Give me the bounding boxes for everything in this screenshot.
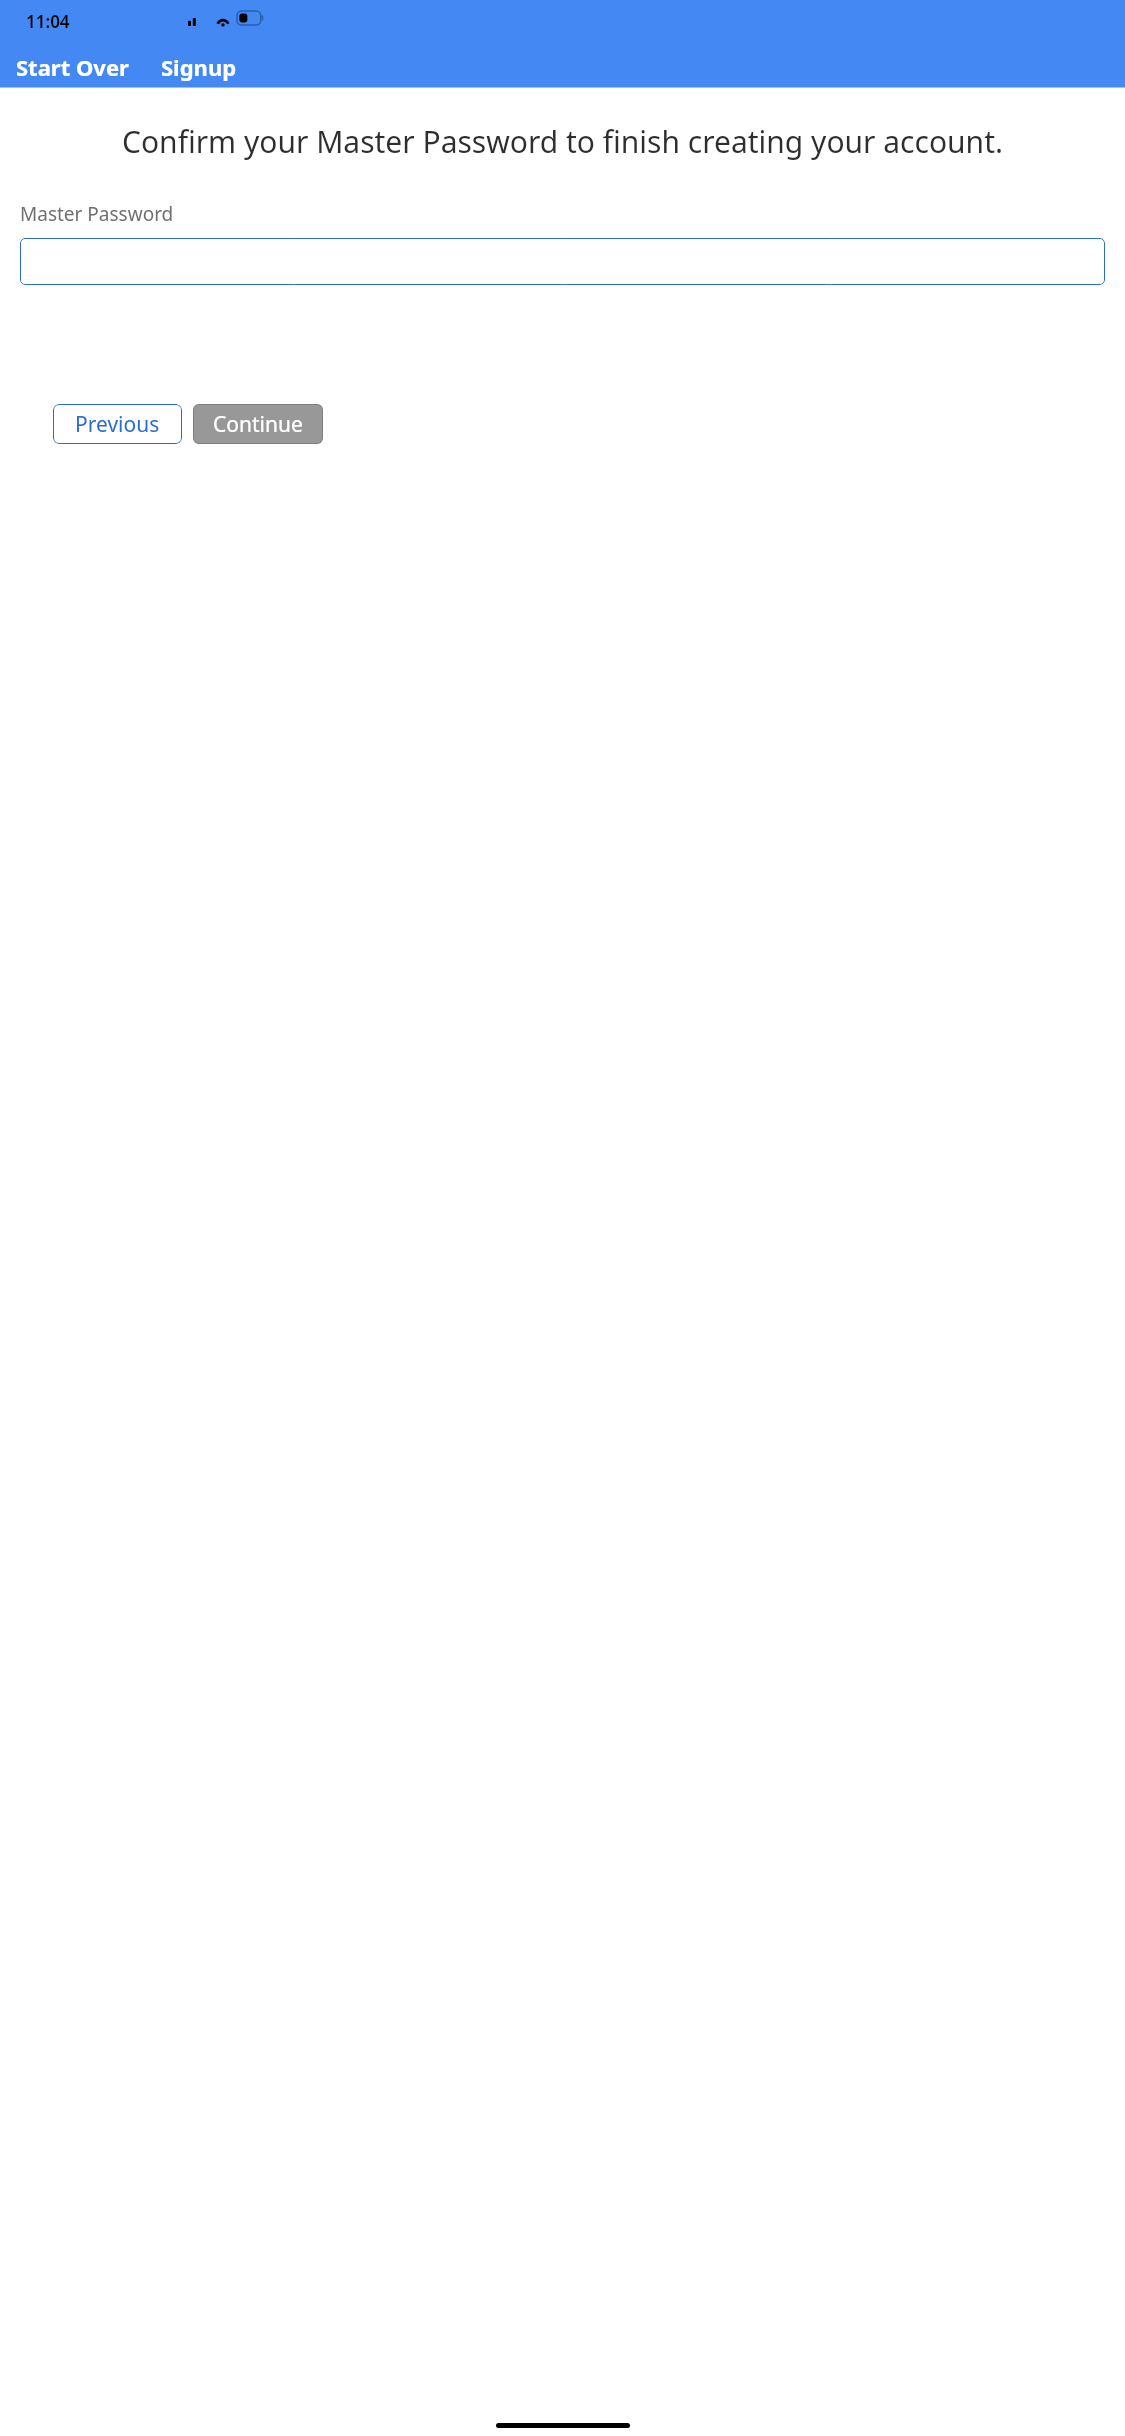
- staticText: Signup: [161, 52, 237, 82]
- staticText: Previous: [75, 410, 160, 439]
- button[interactable]: Signup: [153, 48, 245, 86]
- staticText: Continue: [213, 410, 303, 439]
- staticText: Start Over: [16, 52, 129, 82]
- button[interactable]: Master Password field: [20, 238, 1105, 285]
- button[interactable]: Previous: [53, 404, 182, 444]
- staticText: Master Password: [20, 201, 174, 227]
- staticText: Confirm your Master Password to finish c…: [56, 121, 1069, 162]
- button[interactable]: Continue: [193, 404, 323, 444]
- button[interactable]: Start Over: [8, 48, 137, 86]
- staticText: 11:04: [26, 10, 70, 33]
